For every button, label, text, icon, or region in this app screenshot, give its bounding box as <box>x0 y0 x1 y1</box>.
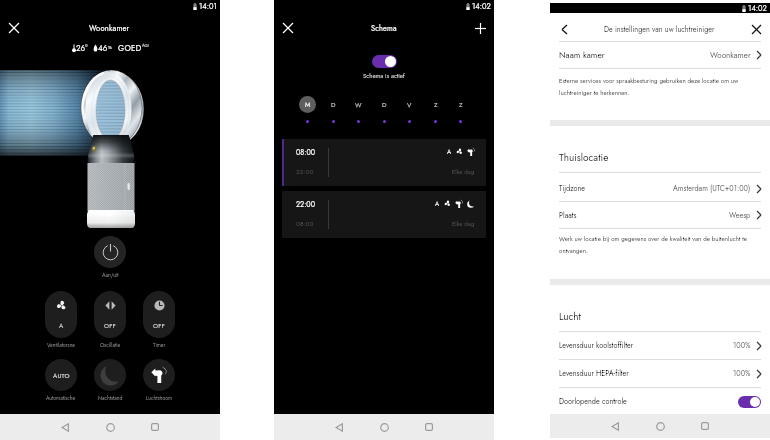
button[interactable]: A <box>45 291 77 338</box>
staticText: Z <box>459 100 463 110</box>
staticText: OFF <box>104 321 116 330</box>
button[interactable]: Home <box>97 414 123 440</box>
staticText: % <box>108 44 112 51</box>
button[interactable]: M <box>299 96 316 123</box>
button[interactable]: Back <box>52 414 78 440</box>
button[interactable]: 22:00 <box>282 191 486 238</box>
staticText: A <box>447 147 452 156</box>
button[interactable]: Recents <box>416 414 442 440</box>
staticText: V <box>407 100 412 110</box>
button[interactable]: Z <box>427 96 444 123</box>
staticText: 08:00 <box>296 147 316 157</box>
button[interactable]: Recents <box>142 414 168 440</box>
staticText: OFF <box>153 321 165 330</box>
staticText: 22:00 <box>296 167 314 177</box>
button[interactable]: D <box>376 96 393 123</box>
button[interactable]: Close <box>742 15 770 43</box>
button[interactable]: 08:00 <box>282 139 486 186</box>
staticText: Timer <box>153 341 166 349</box>
staticText: Plaats <box>559 210 577 221</box>
button[interactable]: Recents <box>692 414 718 438</box>
button[interactable]: Close <box>274 14 302 42</box>
button[interactable]: Back <box>550 15 578 43</box>
staticText: 26° <box>76 42 88 54</box>
button[interactable]: Z <box>452 96 469 123</box>
button[interactable]: AUTO <box>45 359 77 391</box>
staticText: De instellingen van uw luchtreiniger <box>604 24 715 35</box>
staticText: 22:00 <box>296 199 315 209</box>
button[interactable]: Home <box>371 414 397 440</box>
staticText: D <box>331 100 336 110</box>
staticText: A <box>435 199 440 208</box>
staticText: Ventilatorsne <box>47 341 76 349</box>
button[interactable]: Naam kamer <box>559 43 761 67</box>
button[interactable]: Plaats <box>559 204 761 226</box>
staticText: 08:00 <box>296 219 314 229</box>
button[interactable]: Back <box>602 414 628 438</box>
staticText: Doorlopende controle <box>559 396 627 407</box>
staticText: Schema <box>371 23 397 34</box>
staticText: Luchtstroom <box>146 394 173 402</box>
staticText: Z <box>434 100 438 110</box>
staticText: AQI <box>142 43 149 49</box>
staticText: 14:02 <box>472 1 491 12</box>
staticText: Werk uw locatie bij om gegevens over de … <box>559 234 755 255</box>
staticText: Elke dag <box>452 167 475 176</box>
staticText: 46 <box>98 42 108 54</box>
staticText: Levensduur HEPA-filter <box>559 368 629 379</box>
button[interactable] <box>143 359 175 391</box>
button[interactable]: Close <box>0 14 28 42</box>
button[interactable]: OFF <box>143 291 175 338</box>
button[interactable]: Add schedule <box>466 14 494 42</box>
staticText: Woonkamer <box>89 23 130 34</box>
button[interactable]: OFF <box>94 291 126 338</box>
staticText: D <box>382 100 387 110</box>
staticText: Thuislocatie <box>559 150 609 164</box>
button[interactable]: Doorlopende controle <box>559 391 761 412</box>
staticText: Elke dag <box>452 219 475 228</box>
staticText: 100% <box>733 368 751 379</box>
staticText: Levensduur koolstoffilter <box>559 340 634 351</box>
staticText: 14:02 <box>748 3 767 13</box>
button[interactable]: Tijdzone <box>559 177 761 200</box>
button[interactable]: Schema is actief <box>372 55 397 68</box>
button[interactable]: W <box>350 96 367 123</box>
staticText: Tijdzone <box>559 183 586 194</box>
staticText: AUTO <box>53 371 70 380</box>
staticText: A <box>59 321 64 330</box>
staticText: 100% <box>733 340 751 351</box>
button[interactable]: D <box>325 96 342 123</box>
button[interactable]: Levensduur koolstoffilter <box>559 335 761 356</box>
staticText: Woonkamer <box>710 49 751 61</box>
staticText: Naam kamer <box>559 49 605 61</box>
staticText: Schema is actief <box>363 71 405 80</box>
staticText: Aan/uit <box>102 271 119 279</box>
staticText: 14:01 <box>199 1 217 12</box>
staticText: W <box>355 100 362 110</box>
staticText: Oscillatie <box>100 341 121 349</box>
staticText: Amsterdam (UTC+01:00) <box>673 183 751 194</box>
button[interactable]: Aan/uit <box>94 236 126 268</box>
button[interactable]: Home <box>647 414 673 438</box>
button[interactable]: Levensduur HEPA-filter <box>559 363 761 384</box>
staticText: M <box>305 100 311 110</box>
button[interactable] <box>94 359 126 391</box>
staticText: GOED <box>118 42 142 54</box>
staticText: Nachtstand <box>98 394 123 402</box>
staticText: Automatische <box>46 394 76 402</box>
staticText: Lucht <box>559 309 581 323</box>
staticText: Weesp <box>729 210 751 221</box>
button[interactable]: V <box>401 96 418 123</box>
staticText: Externe services voor spraakbesturing ge… <box>559 76 749 97</box>
button[interactable]: Back <box>326 414 352 440</box>
